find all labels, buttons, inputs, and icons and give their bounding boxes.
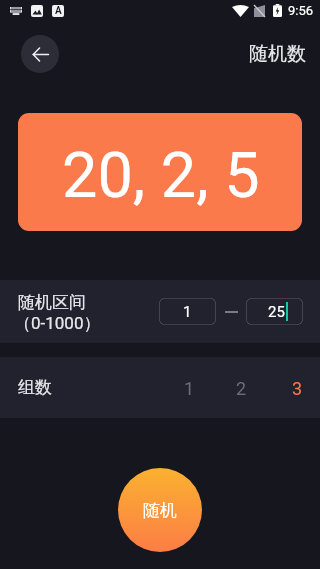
button[interactable]: 20, 2, 5 xyxy=(18,113,302,231)
staticText: （0-1000） xyxy=(14,313,101,334)
button[interactable]: 3 xyxy=(275,365,320,411)
button[interactable]: Back xyxy=(21,35,59,73)
staticText: 25 xyxy=(268,303,285,321)
staticText: 随机数 xyxy=(249,42,306,66)
button[interactable]: 随机区间 xyxy=(0,280,320,343)
staticText: 1 xyxy=(183,303,192,321)
button[interactable]: 2 xyxy=(208,365,275,411)
staticText: 3 xyxy=(292,378,303,399)
staticText: 2 xyxy=(236,378,247,399)
button[interactable]: 随机 xyxy=(118,468,202,552)
staticText: 随机区间 xyxy=(18,292,86,313)
staticText: 20, 2, 5 xyxy=(62,139,260,213)
staticText: 组数 xyxy=(18,377,52,398)
staticText: A xyxy=(55,5,62,17)
staticText: 9:56 xyxy=(288,3,314,18)
button[interactable]: 25 xyxy=(246,298,303,325)
staticText: 随机 xyxy=(143,500,177,521)
button[interactable]: 1 xyxy=(170,365,208,411)
button[interactable]: 1 xyxy=(159,298,216,325)
staticText: 1 xyxy=(184,378,195,399)
